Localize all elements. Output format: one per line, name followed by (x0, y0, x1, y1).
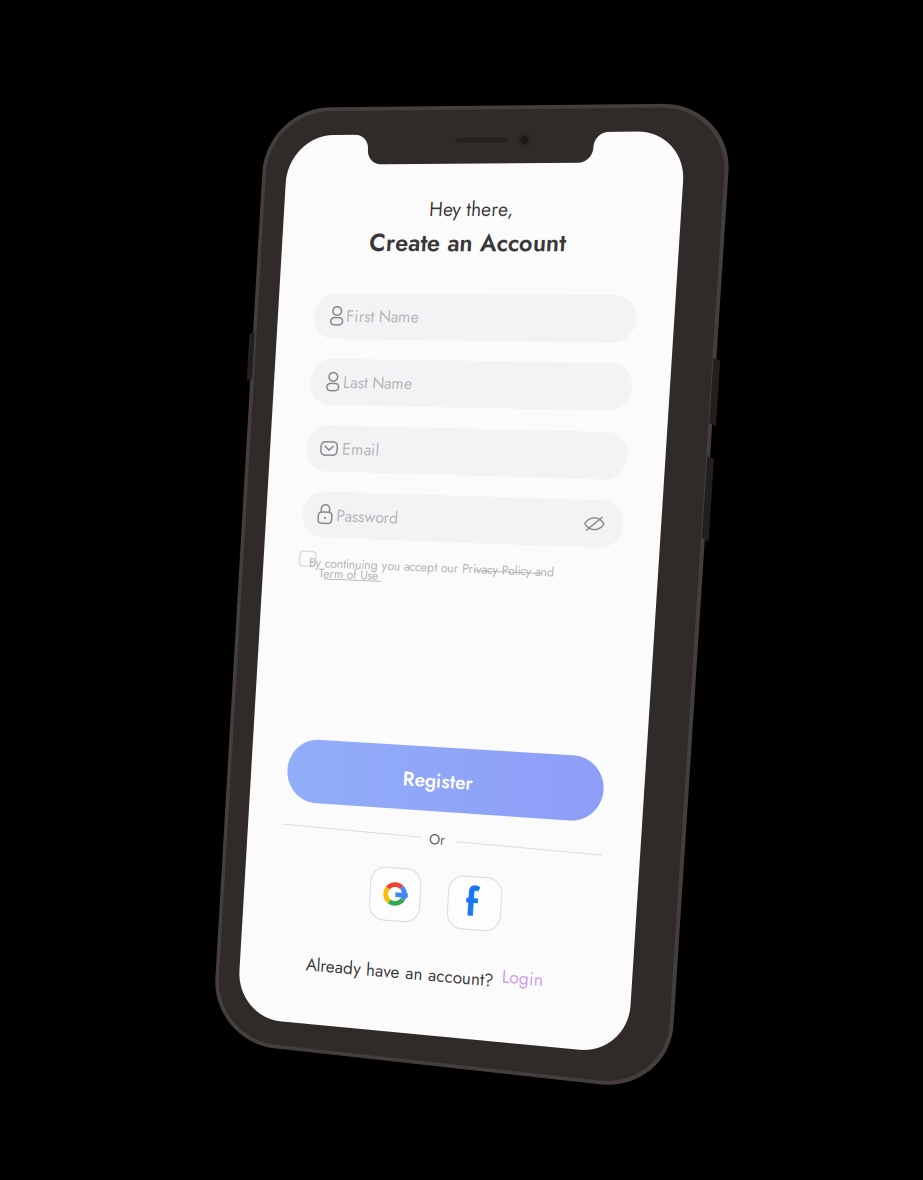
staticText: Term of Use (319, 564, 385, 583)
button[interactable]: Login (0, 0, 923, 1180)
staticText: Create an Account (370, 225, 581, 261)
staticText: Password (337, 504, 405, 529)
button[interactable]: Continue with Facebook (0, 0, 923, 1180)
staticText: Login (503, 963, 547, 990)
staticText: Email (343, 437, 384, 462)
staticText: Register (404, 764, 480, 794)
staticText: By continuing you accept our Privacy Pol… (310, 553, 576, 572)
staticText: Last Name (344, 370, 420, 395)
staticText: f (467, 874, 481, 932)
staticText: Already have an account? (307, 951, 512, 978)
button[interactable]: Continue with Google (0, 0, 923, 1180)
staticText: Or (430, 828, 447, 851)
button[interactable]: Show password (0, 0, 923, 1180)
button[interactable]: Register (0, 0, 923, 1180)
button[interactable]: Accept terms and conditions (0, 0, 923, 1180)
staticText: Hey there, (430, 194, 520, 224)
staticText: First Name (347, 304, 427, 329)
